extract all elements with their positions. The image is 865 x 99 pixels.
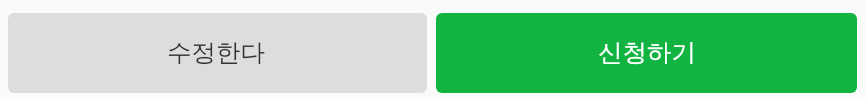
staticText: 신청하기 bbox=[598, 37, 696, 68]
staticText: 수정한다 bbox=[167, 37, 265, 68]
button[interactable]: 신청하기 bbox=[436, 13, 857, 93]
button[interactable]: 수정한다 bbox=[8, 13, 427, 93]
